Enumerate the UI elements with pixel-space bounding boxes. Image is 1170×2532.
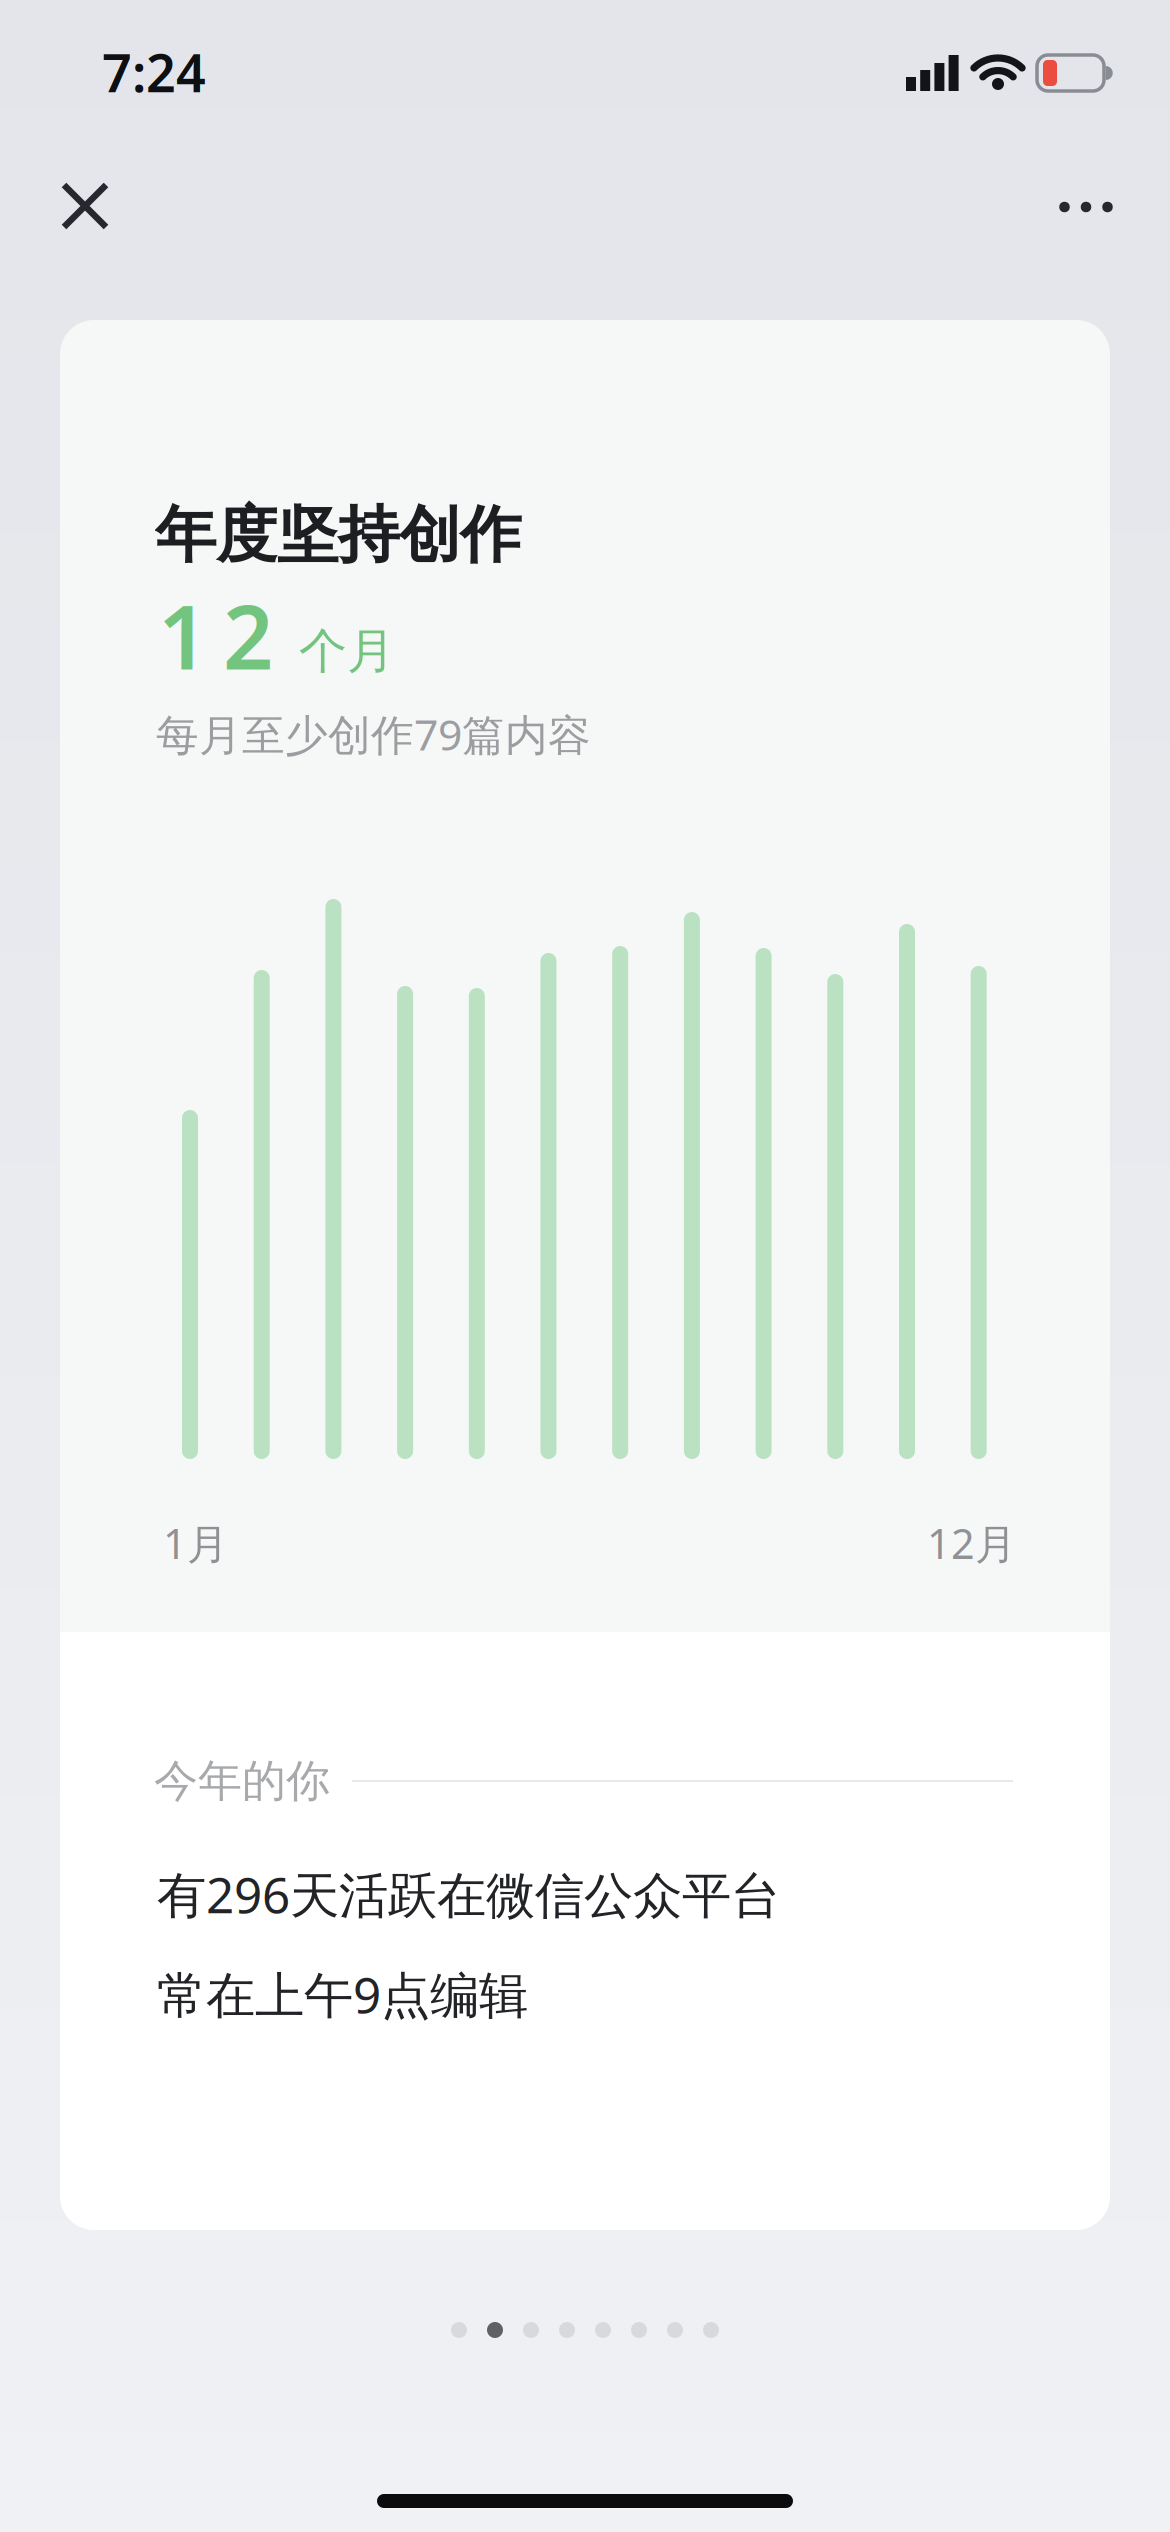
staticText: 个月 [299,622,395,681]
staticText: 1月 [163,1516,228,1570]
staticText: 常在上午9点编辑 [157,1961,528,2027]
button[interactable]: Close [40,161,130,251]
staticText: 今年的你 [154,1754,330,1808]
staticText: 每月至少创作79篇内容 [156,706,591,762]
staticText: 年度坚持创作 [155,497,521,573]
staticText: 7:24 [102,37,206,107]
staticText: 有296天活跃在微信公众平台 [157,1861,780,1927]
staticText: 2 [223,577,273,694]
staticText: 1 [158,577,208,694]
button[interactable]: More [1036,162,1136,252]
staticText: 12月 [927,1516,1016,1570]
